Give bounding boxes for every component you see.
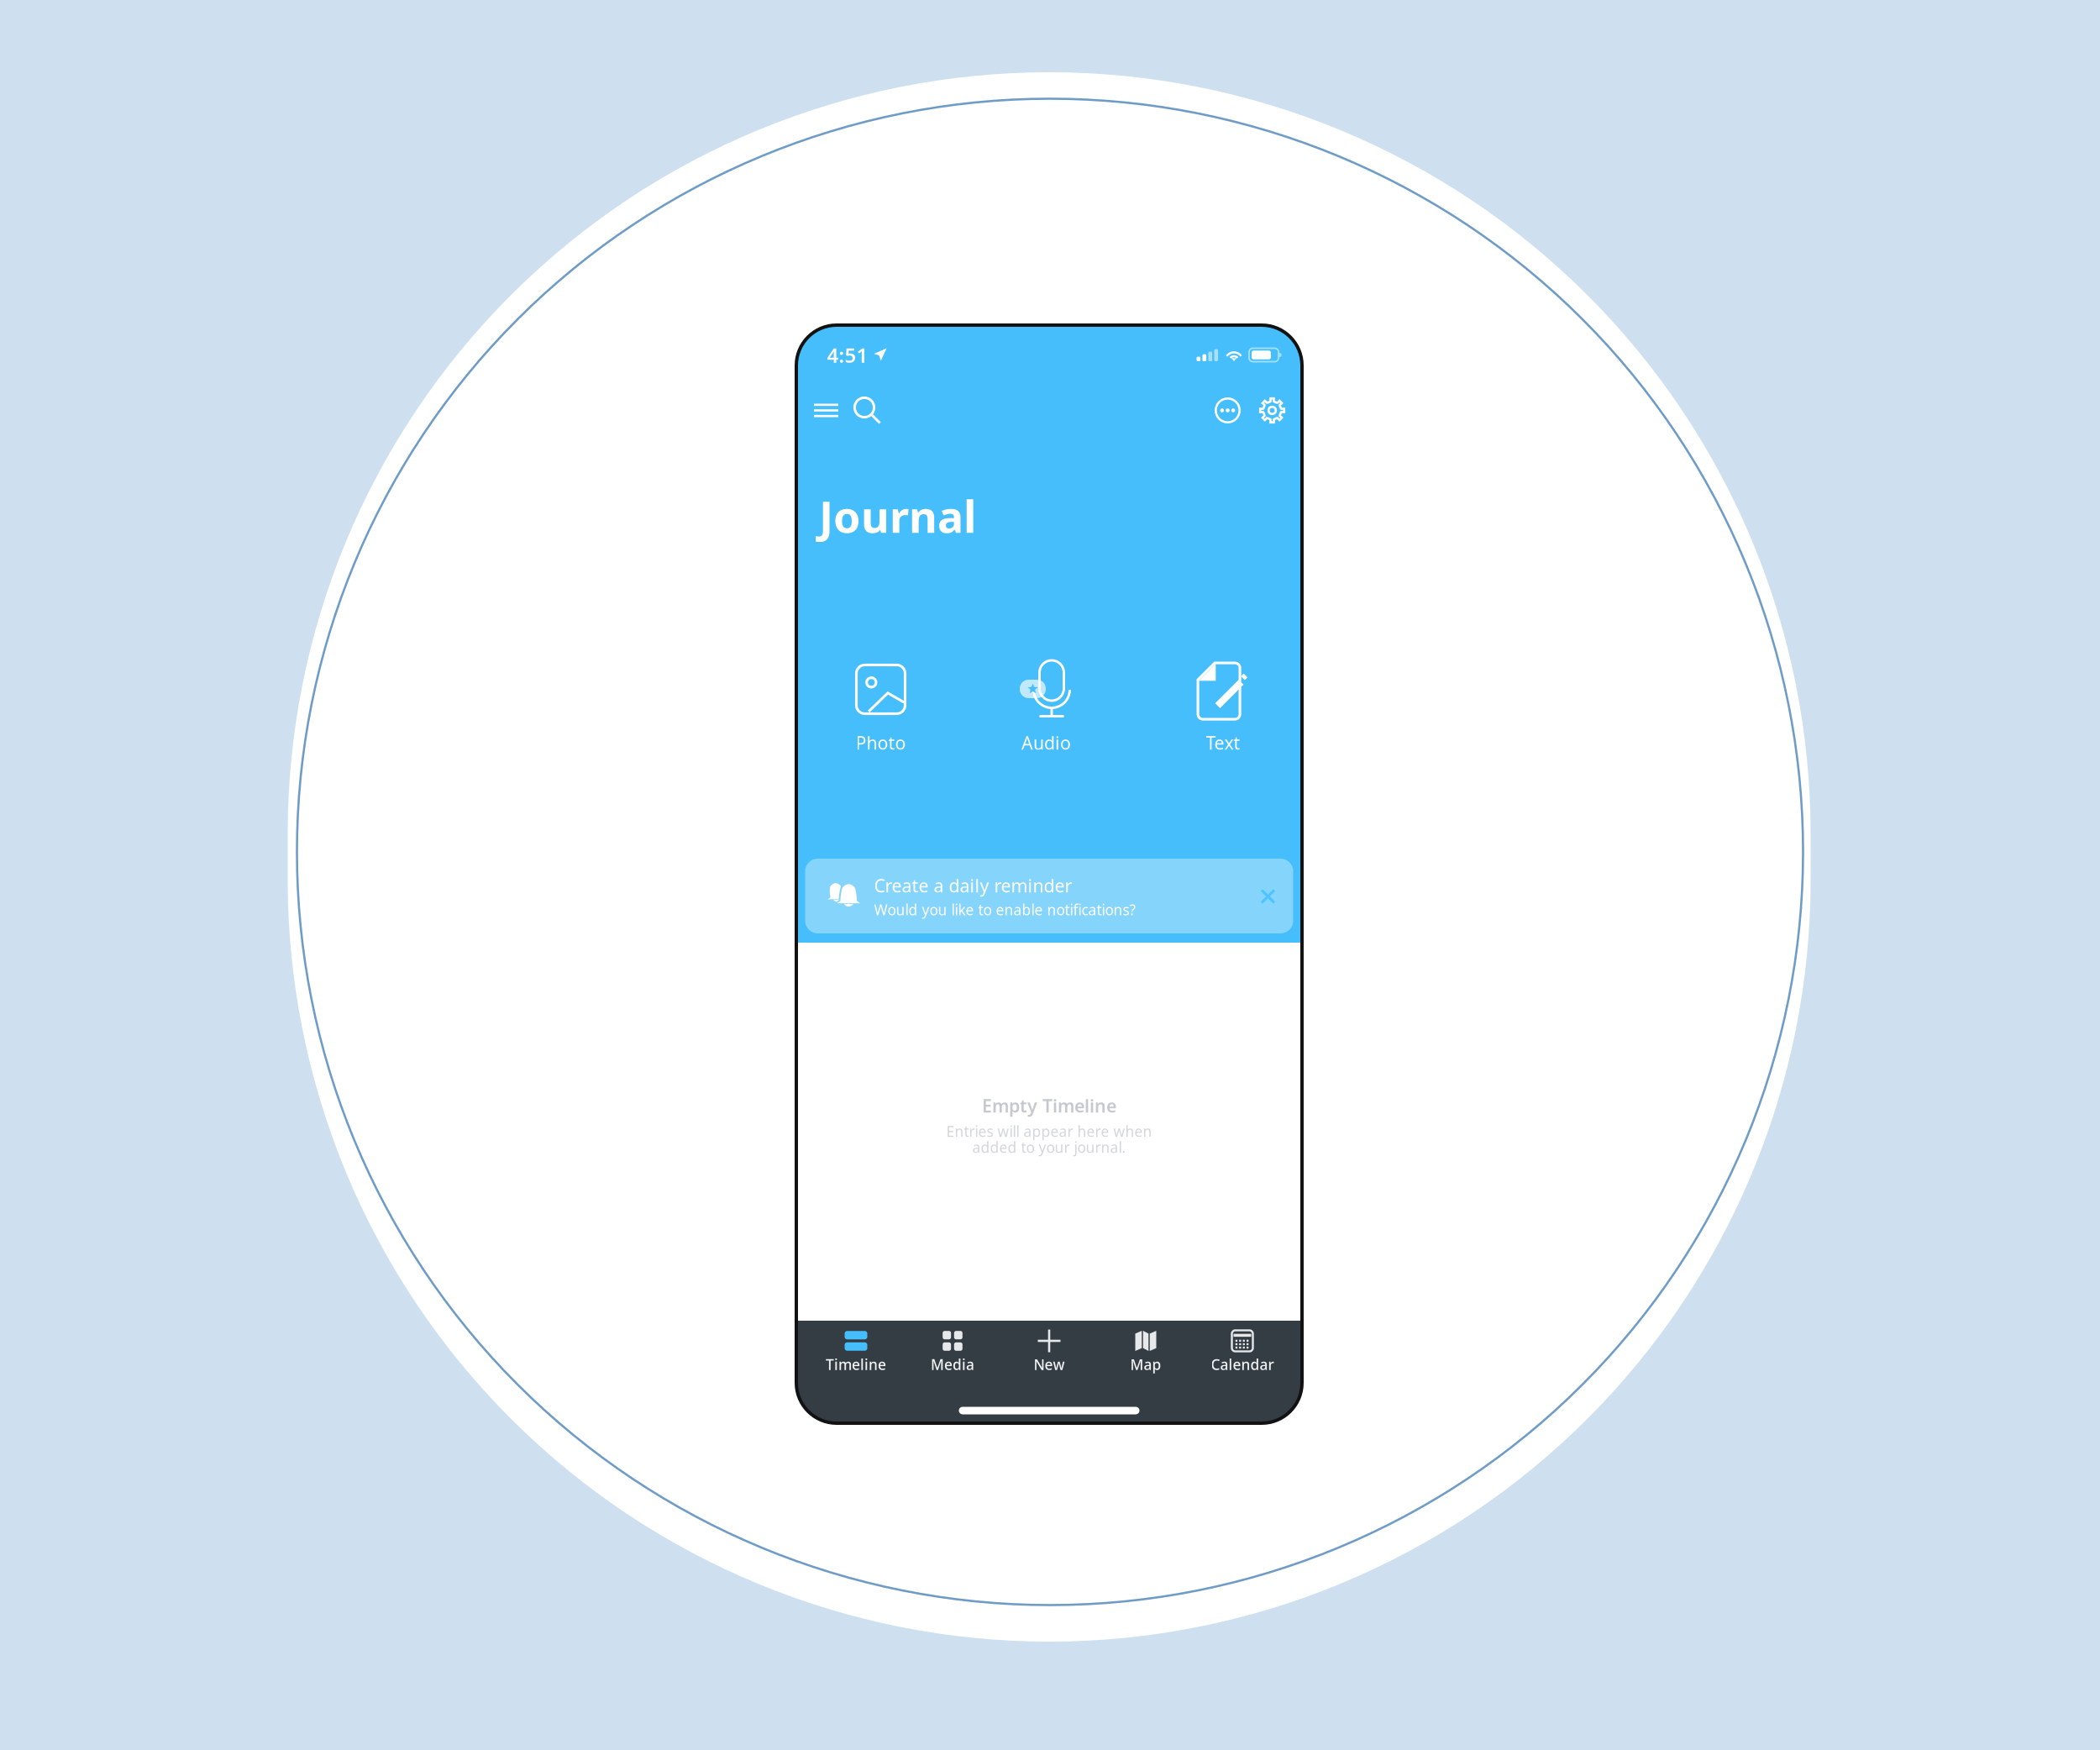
staticText: Journal <box>819 487 976 545</box>
button[interactable]: More <box>1208 391 1247 430</box>
button[interactable]: Create a daily reminder <box>805 859 1293 933</box>
staticText: 4:51 <box>827 342 868 368</box>
button[interactable]: Text <box>1139 594 1307 762</box>
button[interactable]: Settings <box>1253 391 1291 430</box>
staticText: Entries will appear here when <box>946 1122 1152 1141</box>
button[interactable]: Search <box>848 391 887 430</box>
staticText: Media <box>931 1355 974 1374</box>
button[interactable]: Media <box>904 1323 1001 1377</box>
button[interactable]: Photo <box>797 594 965 762</box>
button[interactable]: Map <box>1097 1323 1194 1377</box>
staticText: Map <box>1130 1355 1161 1374</box>
button[interactable]: Audio <box>962 594 1130 762</box>
staticText: Calendar <box>1211 1355 1274 1374</box>
staticText: Create a daily reminder <box>874 874 1072 897</box>
staticText: Audio <box>1021 731 1071 755</box>
staticText: Timeline <box>826 1355 886 1374</box>
button[interactable]: Menu <box>807 391 845 430</box>
button[interactable]: Dismiss <box>1245 874 1291 919</box>
button[interactable]: Timeline <box>808 1323 904 1377</box>
staticText: Empty Timeline <box>982 1094 1116 1117</box>
button[interactable]: Calendar <box>1194 1323 1291 1377</box>
staticText: New <box>1034 1355 1065 1374</box>
button[interactable]: New <box>1001 1323 1097 1377</box>
staticText: added to your journal. <box>972 1138 1126 1157</box>
staticText: Photo <box>856 731 906 755</box>
staticText: Text <box>1206 731 1240 755</box>
staticText: Would you like to enable notifications? <box>874 900 1136 919</box>
